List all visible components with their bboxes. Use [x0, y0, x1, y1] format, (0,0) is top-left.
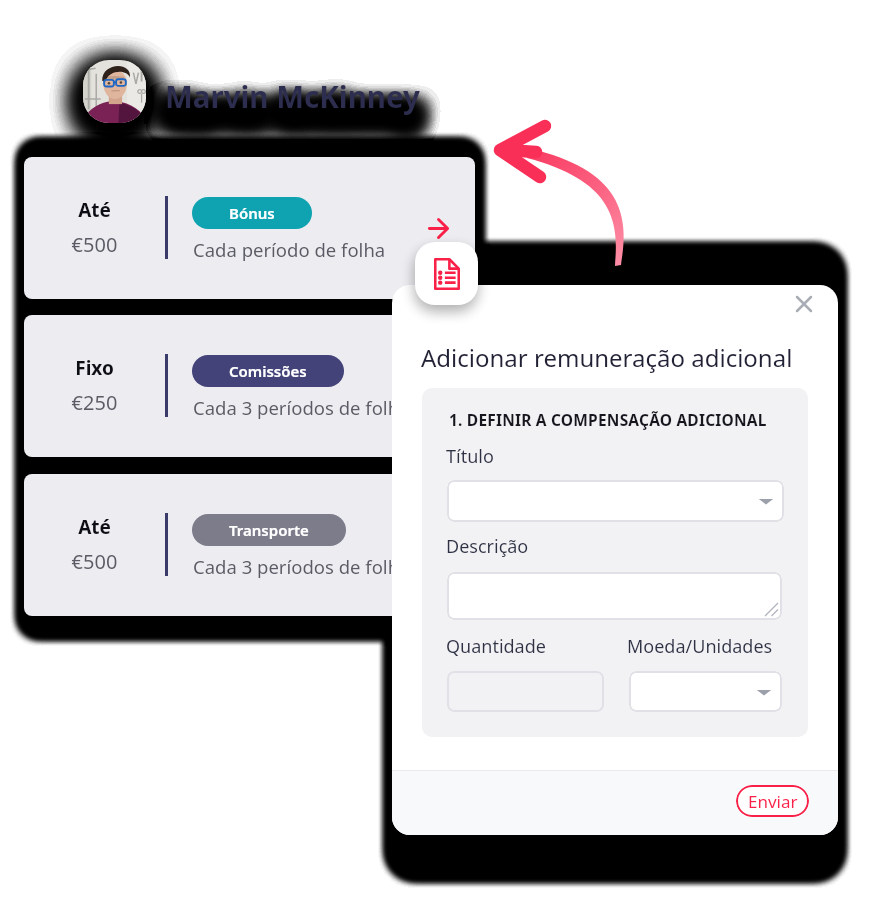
- staticText: 1. DEFINIR A COMPENSAÇÃO ADICIONAL: [449, 409, 767, 430]
- button[interactable]: Fechar: [786, 286, 822, 322]
- staticText: Cada período de folha: [193, 237, 386, 262]
- button[interactable]: Até: [24, 474, 475, 616]
- button[interactable]: Documento: [415, 242, 478, 305]
- staticText: Enviar: [748, 790, 798, 813]
- staticText: Comissões: [229, 361, 307, 381]
- button[interactable]: Campo de texto: [447, 572, 782, 620]
- button[interactable]: Até: [24, 157, 475, 299]
- staticText: Quantidade: [446, 634, 546, 659]
- button[interactable]: Selecionar: [629, 671, 782, 712]
- staticText: Marvin McKinney: [165, 92, 420, 132]
- staticText: Marvin McKinney: [165, 92, 420, 132]
- staticText: Marvin McKinney: [165, 92, 420, 132]
- staticText: Marvin McKinney: [165, 92, 420, 132]
- staticText: Marvin McKinney: [165, 92, 420, 132]
- staticText: Marvin McKinney: [165, 92, 420, 132]
- staticText: Marvin McKinney: [165, 92, 420, 132]
- staticText: Bónus: [229, 203, 275, 223]
- staticText: Marvin McKinney: [165, 76, 420, 116]
- staticText: Cada 3 períodos de folha: [193, 395, 410, 420]
- staticText: €500: [24, 231, 165, 258]
- staticText: Fixo: [24, 355, 165, 381]
- staticText: Marvin McKinney: [165, 92, 420, 132]
- button[interactable]: Ver detalhes: [416, 206, 460, 250]
- staticText: Até: [24, 197, 165, 223]
- staticText: Marvin McKinney: [165, 92, 420, 132]
- staticText: Marvin McKinney: [165, 92, 420, 132]
- staticText: Marvin McKinney: [165, 92, 420, 132]
- staticText: Até: [24, 514, 165, 540]
- staticText: Adicionar remuneração adicional: [421, 341, 793, 374]
- staticText: Marvin McKinney: [165, 92, 420, 132]
- staticText: Título: [446, 444, 494, 469]
- staticText: €250: [24, 389, 165, 416]
- staticText: Descrição: [446, 534, 529, 559]
- staticText: €500: [24, 548, 165, 575]
- staticText: Marvin McKinney: [165, 92, 420, 132]
- staticText: Marvin McKinney: [165, 92, 420, 132]
- staticText: Cada 3 períodos de folha: [193, 554, 410, 579]
- staticText: Marvin McKinney: [165, 92, 420, 132]
- staticText: Marvin McKinney: [165, 92, 420, 132]
- button[interactable]: Enviar: [736, 785, 809, 817]
- staticText: Transporte: [229, 520, 309, 540]
- staticText: Marvin McKinney: [165, 92, 420, 132]
- button[interactable]: Selecionar: [447, 480, 784, 522]
- staticText: Marvin McKinney: [165, 92, 420, 132]
- button[interactable]: Campo de texto: [447, 671, 604, 712]
- button[interactable]: Fixo: [24, 315, 475, 457]
- staticText: Moeda/Unidades: [627, 634, 773, 659]
